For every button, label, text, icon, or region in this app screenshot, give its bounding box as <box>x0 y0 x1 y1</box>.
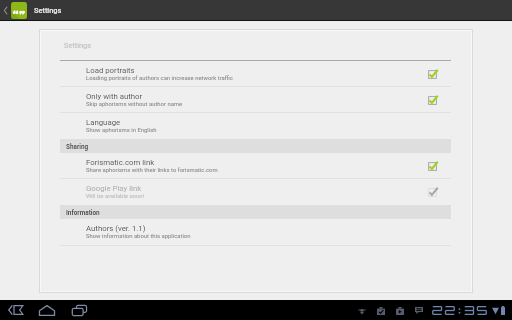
button[interactable]: App icon <box>11 2 27 19</box>
staticText: Information <box>66 209 100 217</box>
staticText: Show information about this application <box>86 233 191 240</box>
button[interactable]: Toggle setting <box>426 67 440 81</box>
button[interactable]: Language <box>41 113 471 139</box>
button[interactable]: Toggle setting <box>426 185 440 199</box>
staticText: Language <box>86 118 121 127</box>
staticText: Loading portraits of authors can increas… <box>86 75 233 82</box>
staticText: Settings <box>64 41 91 50</box>
staticText: Forismatic.com link <box>86 158 155 167</box>
button[interactable]: Authors (ver. 1.1) <box>41 219 471 245</box>
staticText: Will be available soon! <box>86 193 144 200</box>
button[interactable]: Back <box>5 300 25 320</box>
button[interactable]: Navigate up <box>0 0 11 20</box>
staticText: Skip aphorisms without author name <box>86 101 183 108</box>
staticText: Settings <box>34 6 62 15</box>
staticText: Show aphorisms in English <box>86 127 157 134</box>
button[interactable]: Recent apps <box>69 300 89 320</box>
staticText: Google Play link <box>86 184 142 193</box>
button[interactable]: Toggle setting <box>426 159 440 173</box>
button[interactable]: Toggle setting <box>426 93 440 107</box>
button[interactable]: Load portraits <box>41 61 471 86</box>
button[interactable]: Only with author <box>41 87 471 112</box>
button[interactable]: Google Play link <box>41 179 471 205</box>
button[interactable]: Home <box>37 300 57 320</box>
staticText: Only with author <box>86 92 143 101</box>
button[interactable]: Forismatic.com link <box>41 153 471 178</box>
staticText: Authors (ver. 1.1) <box>86 224 146 233</box>
staticText: Sharing <box>66 143 89 151</box>
staticText: Share aphorisms with their links to fori… <box>86 167 218 174</box>
staticText: Load portraits <box>86 66 135 75</box>
